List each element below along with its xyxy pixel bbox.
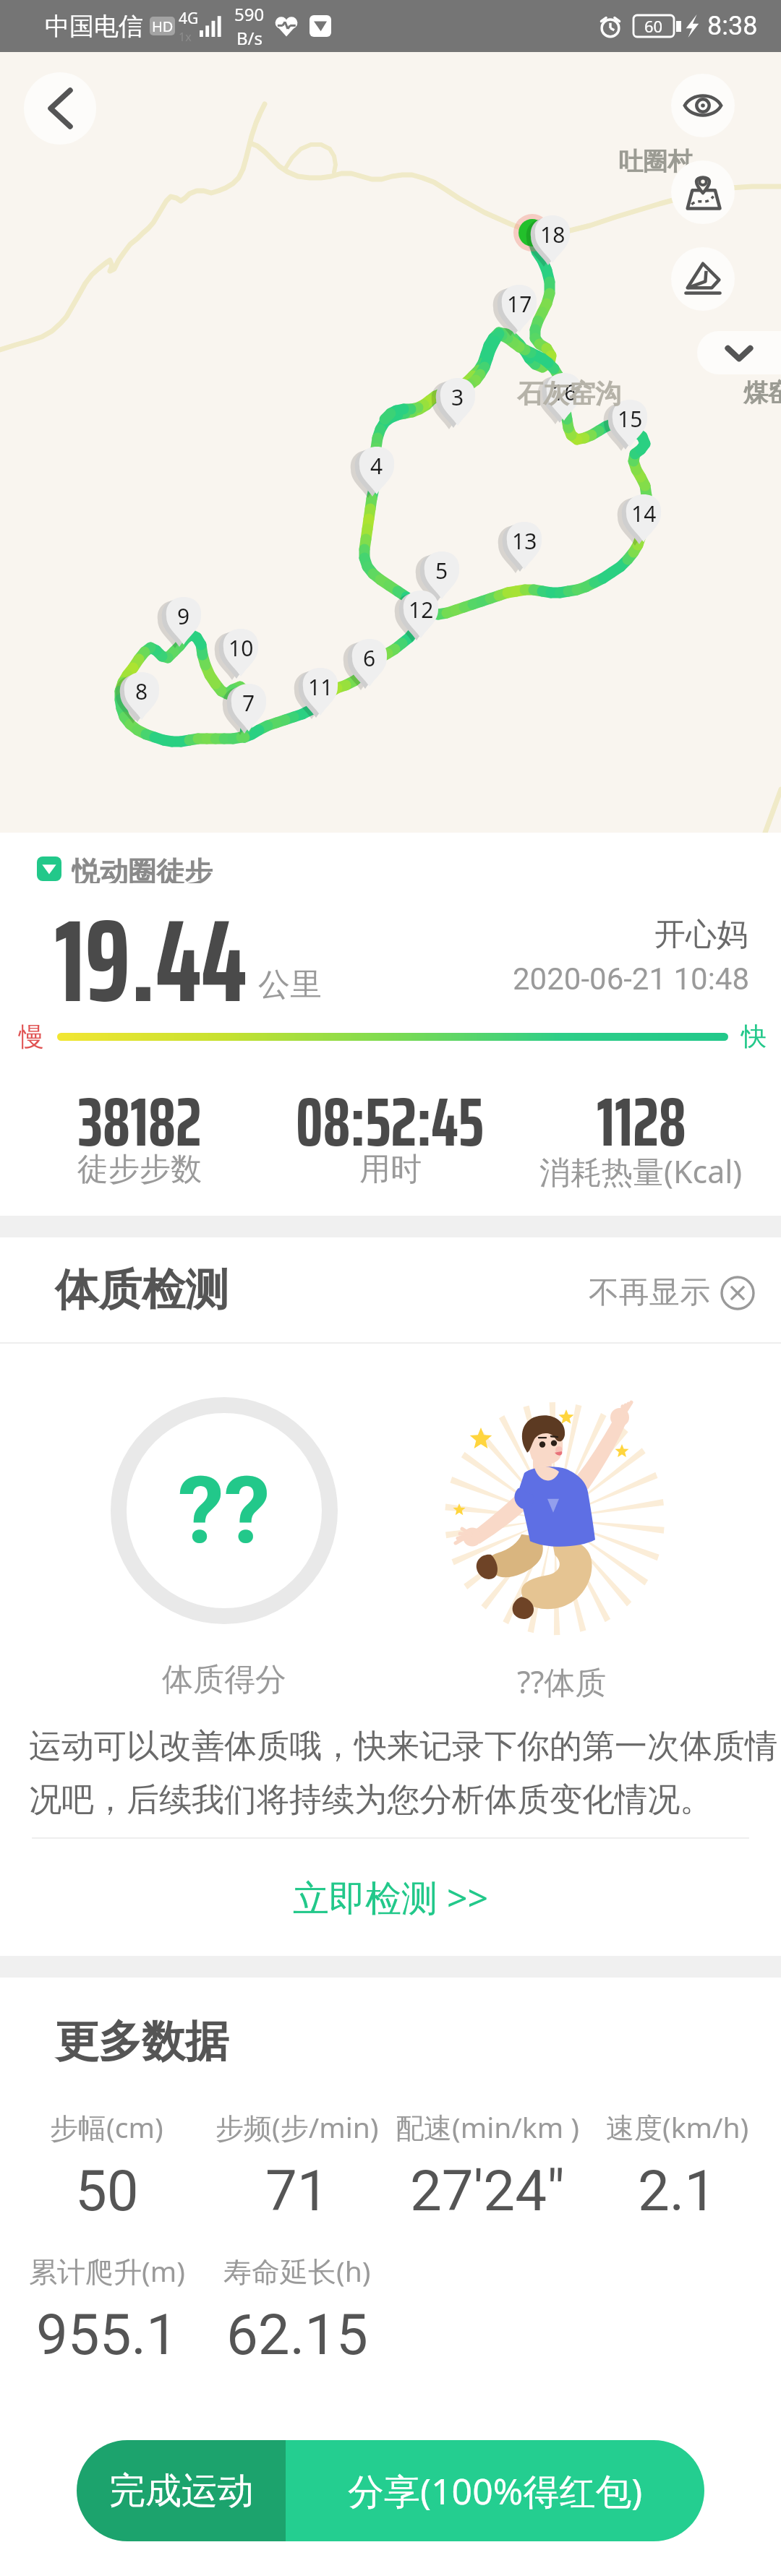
staticText: 2.1 — [638, 2158, 717, 2224]
staticText: B/s — [236, 26, 263, 50]
staticText: 5 — [435, 556, 448, 585]
button[interactable]: Show on map — [671, 74, 735, 137]
staticText: 速度(km/h) — [606, 2108, 749, 2146]
staticText: 3 — [451, 382, 464, 412]
staticText: 15 — [618, 404, 643, 434]
staticText: 公里 — [258, 965, 322, 1005]
staticText: 16 — [552, 377, 577, 407]
staticText: 运动可以改善体质哦，快来记录下你的第一次体质情况吧，后续我们将持续为您分析体质变… — [29, 1726, 781, 1821]
staticText: 50 — [75, 2158, 139, 2224]
button[interactable]: Back — [24, 72, 96, 145]
staticText: 10 — [229, 633, 254, 663]
staticText: 4G — [179, 8, 199, 29]
staticText: 配速(min/km ) — [396, 2108, 579, 2146]
staticText: 4 — [370, 451, 383, 481]
staticText: 38182 — [78, 1068, 202, 1175]
staticText: 分享(100%得红包) — [348, 2466, 643, 2515]
staticText: 悦动圈徒步 — [72, 854, 213, 883]
staticText: 955.1 — [36, 2302, 178, 2368]
staticText: 消耗热量(Kcal) — [539, 1150, 743, 1193]
staticText: 1128 — [597, 1068, 686, 1175]
staticText: 14 — [631, 499, 657, 528]
staticText: 27'24" — [410, 2158, 565, 2224]
staticText: 累计爬升(m) — [29, 2251, 185, 2290]
staticText: 煤窑 — [743, 377, 781, 408]
staticText: 13 — [512, 526, 537, 556]
staticText: 08:52:45 — [296, 1068, 485, 1175]
staticText: 慢 — [19, 1021, 44, 1052]
button[interactable]: Collapse — [697, 331, 781, 374]
staticText: 体质检测 — [55, 1263, 229, 1318]
button[interactable]: Map markers — [671, 160, 735, 224]
staticText: 徒步步数 — [77, 1150, 202, 1189]
button[interactable]: 分享(100%得红包) — [286, 2440, 704, 2541]
button[interactable]: Share — [671, 247, 735, 311]
staticText: 590 — [234, 2, 265, 26]
staticText: 开心妈 — [654, 915, 748, 954]
staticText: 更多数据 — [55, 2014, 229, 2069]
staticText: ??体质 — [517, 1660, 607, 1703]
staticText: 不再显示 — [589, 1274, 710, 1312]
staticText: 1x — [179, 29, 192, 45]
staticText: 60 — [644, 15, 663, 37]
staticText: 石灰窑沟 — [517, 377, 621, 410]
staticText: ?? — [178, 1456, 270, 1565]
staticText: 立即检测 >> — [293, 1873, 489, 1922]
staticText: 完成运动 — [109, 2468, 254, 2514]
staticText: 11 — [308, 672, 333, 702]
staticText: 71 — [265, 2158, 329, 2224]
staticText: 步幅(cm) — [50, 2108, 163, 2146]
staticText: 步频(步/min) — [215, 2108, 379, 2146]
staticText: 6 — [363, 643, 376, 673]
staticText: 中国电信 — [45, 11, 143, 42]
button[interactable]: 完成运动 — [77, 2440, 286, 2541]
staticText: 7 — [242, 688, 255, 718]
staticText: 体质得分 — [162, 1660, 286, 1699]
button[interactable]: 不再显示 — [584, 1269, 759, 1316]
staticText: 8 — [135, 677, 148, 706]
staticText: 17 — [507, 289, 532, 319]
staticText: 12 — [409, 595, 434, 624]
staticText: 吐圈村 — [618, 146, 692, 177]
staticText: 2020-06-21 10:48 — [513, 961, 750, 997]
staticText: 9 — [177, 601, 190, 631]
staticText: 18 — [540, 220, 566, 249]
staticText: 19.44 — [54, 870, 247, 1052]
staticText: 寿命延长(h) — [223, 2251, 371, 2290]
staticText: 快 — [741, 1021, 767, 1052]
staticText: 用时 — [359, 1150, 422, 1189]
button[interactable]: 立即检测 >> — [0, 1839, 781, 1956]
staticText: HD — [152, 17, 174, 35]
staticText: 8:38 — [707, 11, 758, 41]
staticText: 62.15 — [226, 2302, 368, 2368]
